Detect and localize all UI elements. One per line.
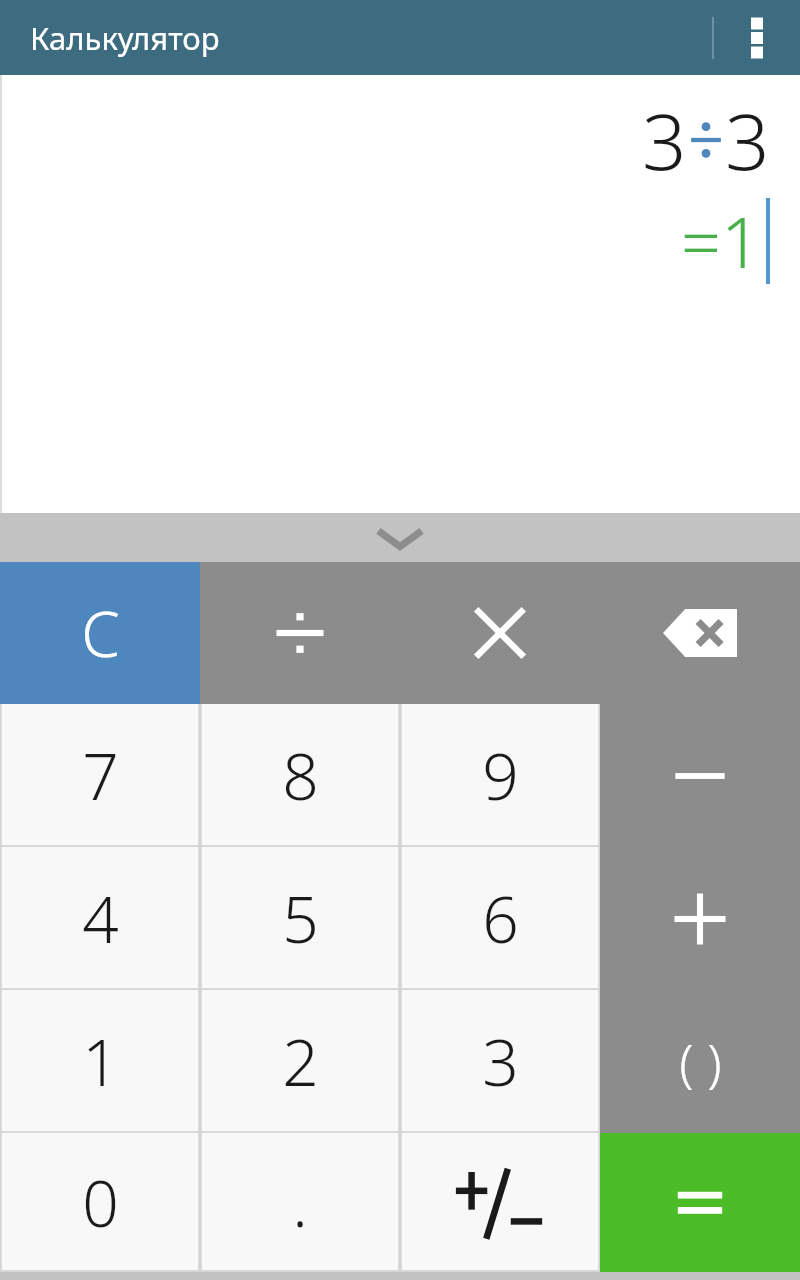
staticText: 4 [82,875,119,962]
staticText: . [292,1159,308,1246]
button[interactable]: 6 [400,847,600,990]
button[interactable]: . [200,1133,400,1272]
staticText: =1 [681,193,761,288]
button[interactable]: Plus minus [400,1133,600,1272]
button[interactable]: Multiply [400,562,600,704]
staticText: 3 [482,1018,519,1105]
staticText: 9 [482,732,519,819]
button[interactable]: 2 [200,990,400,1133]
staticText: 5 [282,875,319,962]
button[interactable]: Equals [600,1133,800,1272]
staticText: 6 [482,875,519,962]
button[interactable]: 9 [400,704,600,847]
button[interactable]: Divide [200,562,400,704]
button[interactable]: 8 [200,704,400,847]
staticText: 2 [282,1018,319,1105]
button[interactable]: Collapse display [0,513,800,562]
staticText: C [81,591,120,675]
button[interactable]: Parentheses [600,990,800,1133]
button[interactable]: Plus [600,847,800,990]
button[interactable]: 0 [0,1133,200,1272]
staticText: 3 [642,87,687,193]
staticText: 1 [82,1018,119,1105]
staticText: 3 [725,87,770,193]
button[interactable]: 3 [400,990,600,1133]
staticText: ( ) [679,1026,722,1097]
button[interactable]: Clear [0,562,200,704]
staticText: 8 [282,732,319,819]
button[interactable]: Backspace [600,562,800,704]
button[interactable]: Minus [600,704,800,847]
staticText: 0 [82,1159,119,1246]
button[interactable]: 4 [0,847,200,990]
button[interactable]: 1 [0,990,200,1133]
staticText: Калькулятор [30,17,220,59]
button[interactable]: More options [714,0,800,75]
staticText: 7 [82,732,119,819]
button[interactable]: 5 [200,847,400,990]
button[interactable]: 7 [0,704,200,847]
